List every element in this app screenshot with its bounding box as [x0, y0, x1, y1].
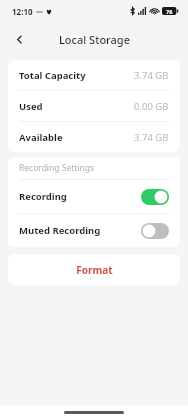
staticText: 3.74 GB — [134, 131, 169, 144]
staticText: Recording — [19, 190, 67, 203]
button[interactable]: Muted Recording off — [141, 223, 169, 239]
button[interactable]: Total Capacity — [8, 60, 180, 90]
staticText: Format — [76, 263, 113, 277]
staticText: 3.74 GB — [134, 69, 169, 82]
button[interactable]: Available — [8, 122, 180, 152]
button[interactable]: Recording — [8, 180, 180, 213]
button[interactable]: Used — [8, 91, 180, 121]
staticText: Local Storage — [59, 32, 130, 47]
staticText: Muted Recording — [19, 224, 101, 237]
staticText: Available — [19, 131, 63, 144]
staticText: Total Capacity — [19, 69, 86, 82]
staticText: 76 — [166, 8, 173, 15]
staticText: Recording Settings — [19, 162, 95, 174]
staticText: Used — [19, 100, 43, 113]
staticText: 0.00 GB — [134, 100, 169, 113]
button[interactable]: Recording on — [141, 189, 169, 205]
button[interactable]: Muted Recording — [8, 214, 180, 247]
staticText: 12:10 — [12, 6, 33, 17]
button[interactable]: Format — [8, 254, 180, 285]
button[interactable]: Back — [6, 26, 32, 52]
